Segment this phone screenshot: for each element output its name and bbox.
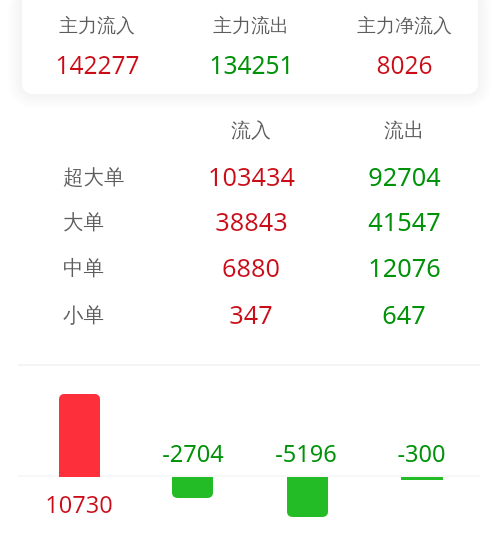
staticText: -5196: [275, 437, 337, 469]
button[interactable]: 中单净流入 -5196: [287, 477, 328, 517]
staticText: 12076: [368, 250, 441, 284]
staticText: 6880: [222, 250, 280, 284]
staticText: 流出: [384, 118, 424, 143]
staticText: 中单: [63, 255, 104, 281]
staticText: 347: [229, 297, 273, 331]
button[interactable]: 超大单: [0, 154, 500, 200]
staticText: -2704: [162, 437, 224, 469]
button[interactable]: 主力流入: [21, 0, 173, 93]
button[interactable]: 小单: [0, 292, 500, 338]
staticText: -300: [397, 437, 446, 469]
staticText: 主力流入: [59, 14, 135, 38]
staticText: 647: [382, 297, 426, 331]
staticText: 134251: [209, 48, 294, 81]
staticText: 8026: [376, 48, 433, 81]
staticText: 流入: [231, 118, 271, 143]
staticText: 38843: [215, 204, 288, 238]
button[interactable]: 主力流出: [175, 0, 327, 93]
button[interactable]: 中单: [0, 245, 500, 291]
staticText: 10730: [45, 488, 113, 520]
staticText: 92704: [368, 159, 441, 193]
button[interactable]: 主力净流入: [328, 0, 480, 93]
staticText: 主力净流入: [357, 14, 452, 38]
staticText: 142277: [55, 48, 140, 81]
staticText: 超大单: [63, 164, 125, 190]
staticText: 小单: [63, 302, 104, 328]
staticText: 大单: [63, 209, 104, 235]
staticText: 103434: [208, 159, 295, 193]
button[interactable]: 大单: [0, 199, 500, 245]
button[interactable]: 大单净流入 -2704: [172, 477, 213, 498]
button[interactable]: 超大单净流入 10730: [59, 394, 100, 477]
staticText: 主力流出: [213, 14, 289, 38]
staticText: 41547: [368, 204, 441, 238]
